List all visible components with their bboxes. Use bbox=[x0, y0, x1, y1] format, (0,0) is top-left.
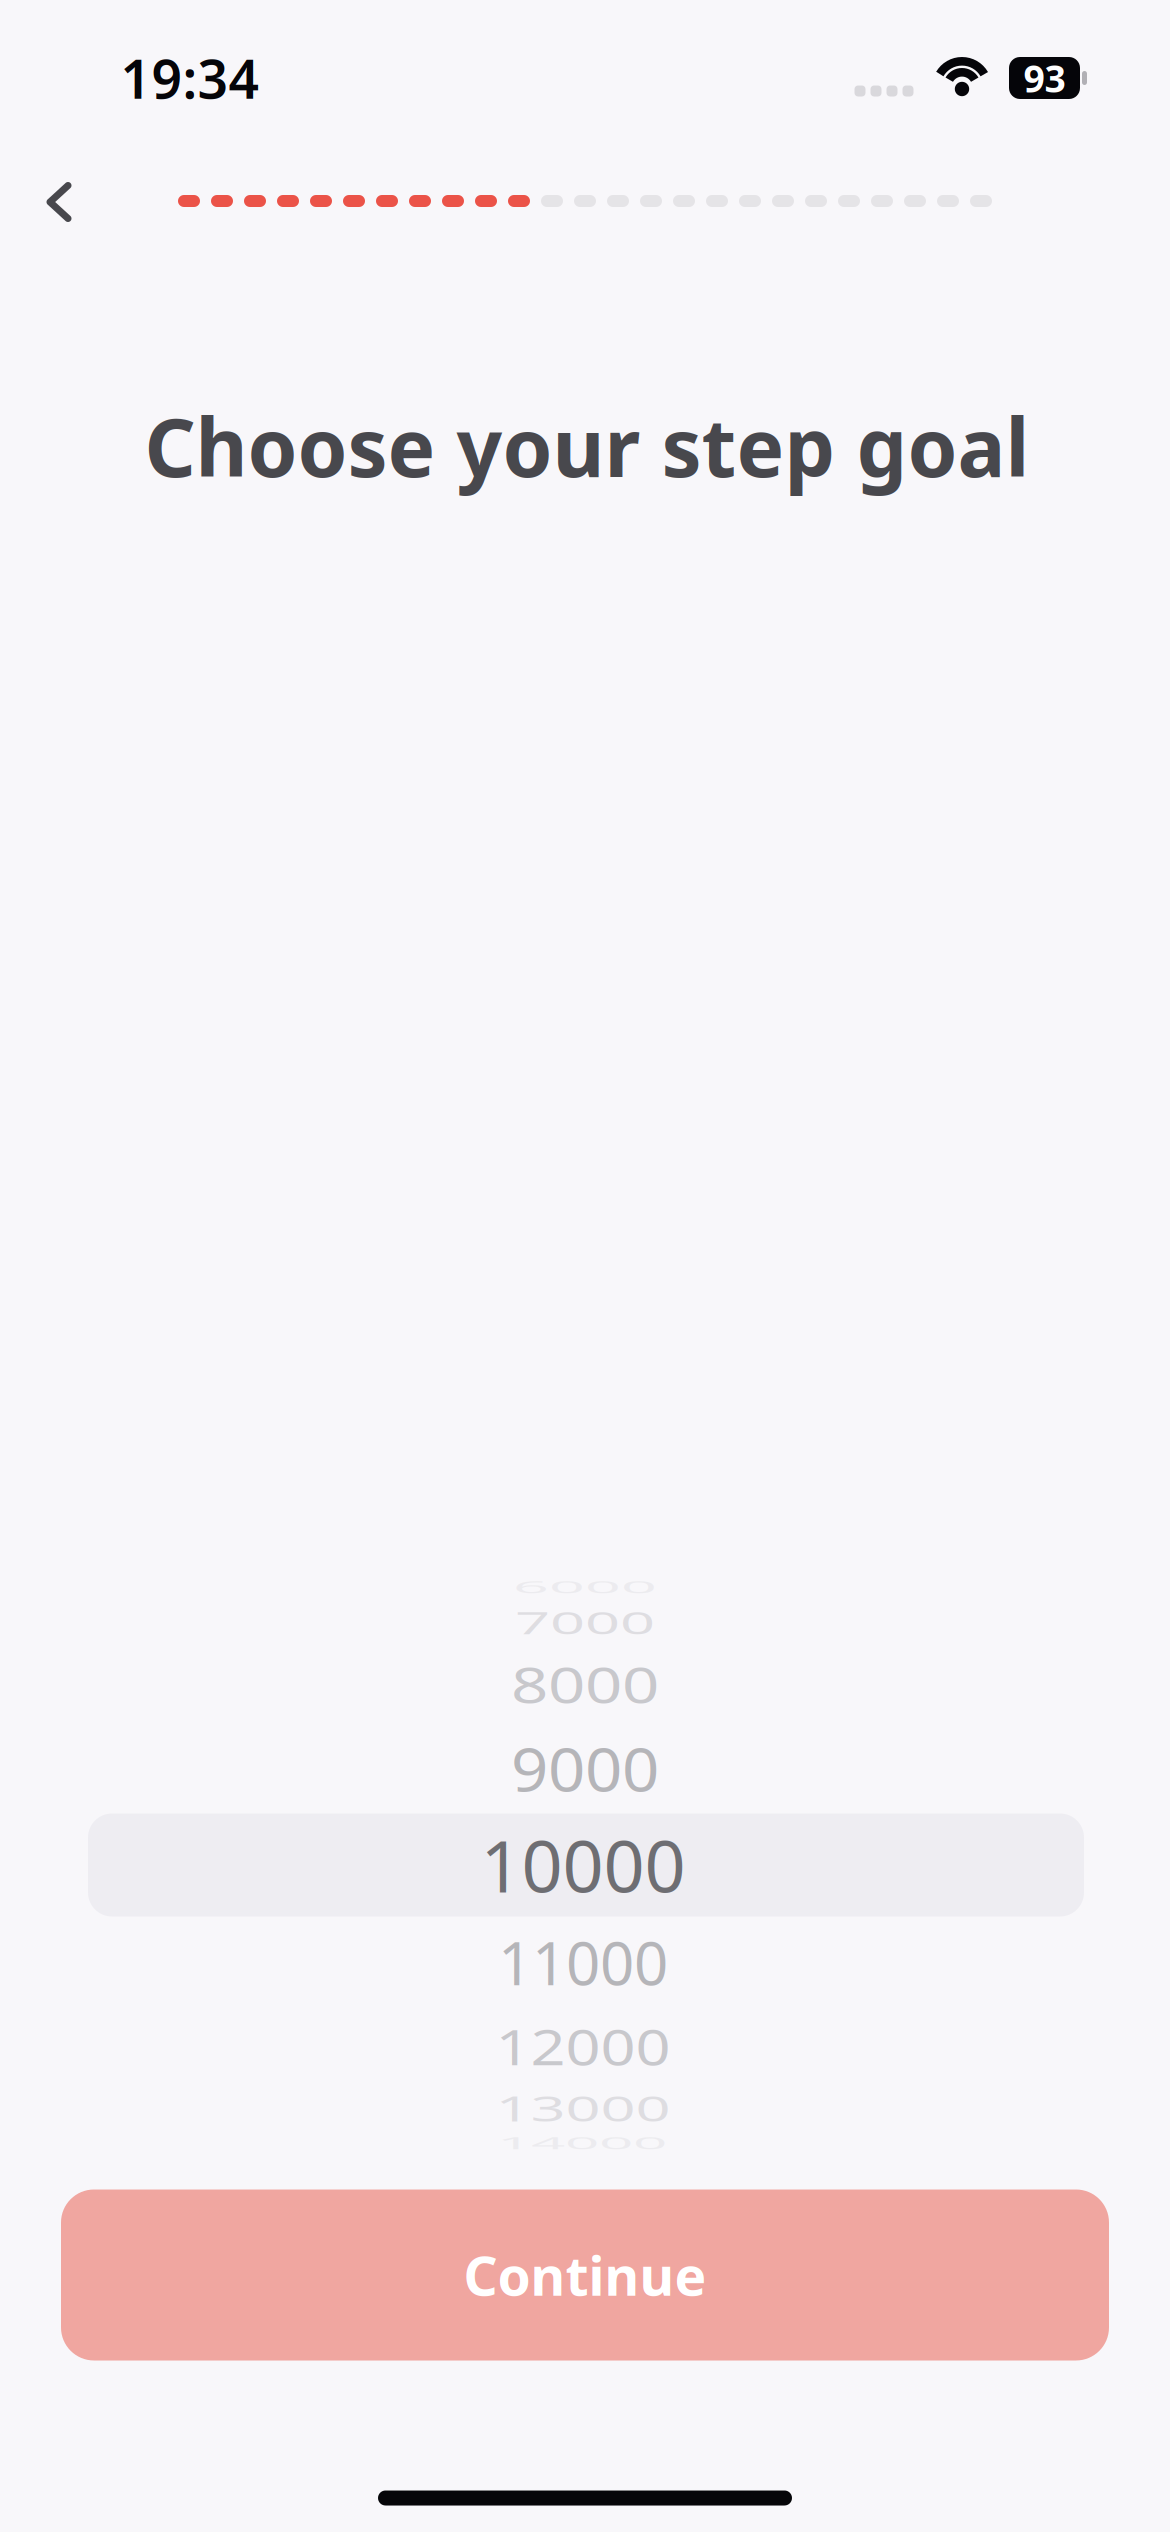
button[interactable]: 10000 bbox=[88, 1813, 1084, 1916]
button[interactable]: 7000 bbox=[515, 1581, 655, 1663]
staticText: 8000 bbox=[511, 1641, 659, 1727]
button[interactable]: 12000 bbox=[495, 2005, 670, 2087]
staticText: 7000 bbox=[515, 1581, 655, 1663]
staticText: 14000 bbox=[497, 2103, 667, 2183]
staticText: 9000 bbox=[511, 1725, 659, 1811]
staticText: Continue bbox=[463, 2240, 706, 2310]
staticText: 93 bbox=[1023, 53, 1065, 103]
staticText: 12000 bbox=[495, 2005, 670, 2087]
staticText: 11000 bbox=[498, 1922, 668, 2002]
staticText: 10000 bbox=[480, 1817, 685, 1912]
staticText: 13000 bbox=[495, 2067, 670, 2149]
button[interactable]: 11000 bbox=[498, 1922, 668, 2002]
button[interactable]: 14000 bbox=[497, 2103, 667, 2183]
button[interactable]: 9000 bbox=[511, 1725, 659, 1811]
button[interactable]: 8000 bbox=[511, 1641, 659, 1727]
button[interactable]: 13000 bbox=[495, 2067, 670, 2149]
button[interactable]: Continue bbox=[61, 2189, 1109, 2360]
staticText: 19:34 bbox=[120, 43, 259, 113]
staticText: 6000 bbox=[513, 1545, 657, 1629]
button[interactable]: Back bbox=[11, 154, 107, 250]
button[interactable]: 6000 bbox=[513, 1545, 657, 1629]
staticText: Choose your step goal bbox=[144, 393, 1029, 499]
